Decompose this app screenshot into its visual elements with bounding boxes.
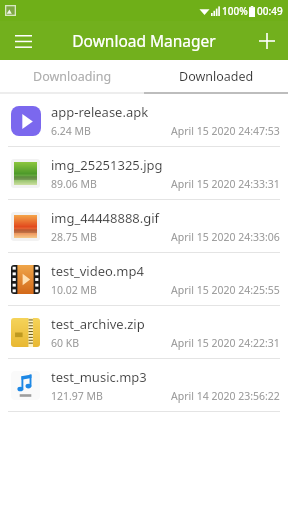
button[interactable]: img_44448888.gif [0,200,288,252]
staticText: app-release.apk [51,103,149,121]
staticText: 6.24 MB [51,124,91,138]
button[interactable]: test_video.mp4 [0,253,288,305]
button[interactable]: Downloading [0,60,144,92]
staticText: Downloading [33,68,112,85]
button[interactable]: img_25251325.jpg [0,147,288,199]
staticText: img_25251325.jpg [51,156,163,174]
staticText: img_44448888.gif [51,209,160,227]
staticText: April 15 2020 24:22:31 [171,336,280,350]
staticText: test_archive.zip [51,315,145,333]
staticText: 28.75 MB [51,230,97,244]
button[interactable]: Downloaded [144,60,288,92]
staticText: test_video.mp4 [51,262,144,280]
staticText: 60 KB [51,336,80,350]
staticText: 00:49 [257,4,283,18]
staticText: Download Manager [72,30,216,51]
button[interactable]: Add download [250,24,284,58]
staticText: 100% [222,4,248,18]
button[interactable]: test_archive.zip [0,306,288,358]
staticText: test_music.mp3 [51,368,147,386]
staticText: 89.06 MB [51,177,97,191]
staticText: Downloaded [179,68,254,85]
button[interactable]: test_music.mp3 [0,359,288,411]
staticText: April 15 2020 24:25:55 [171,283,280,297]
staticText: 10.02 MB [51,283,97,297]
staticText: April 14 2020 23:56:22 [171,389,280,403]
staticText: April 15 2020 24:33:06 [171,230,280,244]
button[interactable]: app-release.apk [0,94,288,146]
button[interactable]: Open navigation menu [6,24,40,58]
staticText: April 15 2020 24:47:53 [171,124,280,138]
staticText: 121.97 MB [51,389,103,403]
staticText: April 15 2020 24:33:31 [171,177,280,191]
